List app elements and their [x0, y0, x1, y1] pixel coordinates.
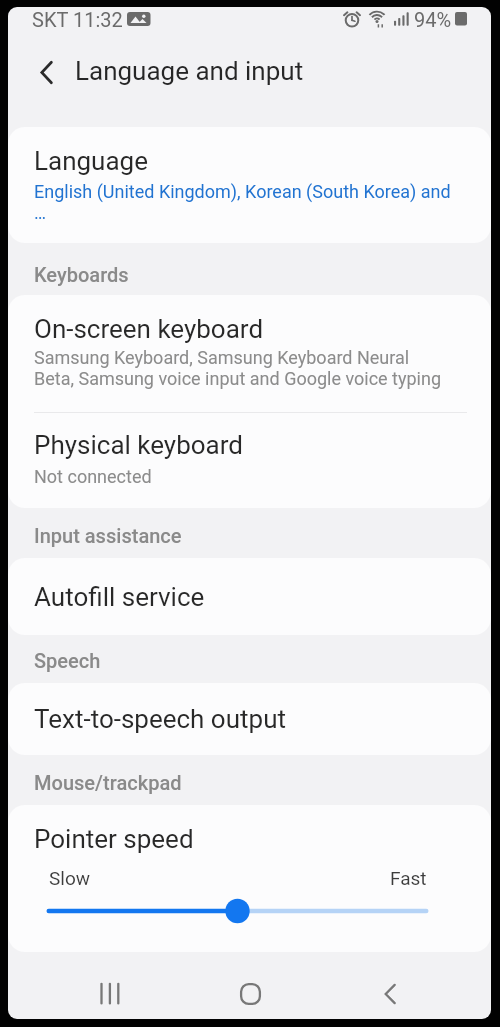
staticText: 94% [414, 8, 452, 31]
staticText: Keyboards [34, 263, 129, 286]
staticText: Fast [390, 867, 427, 889]
button[interactable] [24, 50, 68, 94]
staticText: Pointer speed [34, 824, 194, 854]
button[interactable]: Physical keyboard [8, 413, 491, 508]
staticText: Not connected [34, 466, 152, 487]
button[interactable]: Pointer speed [8, 805, 491, 952]
button[interactable]: Language [8, 127, 491, 243]
button[interactable]: Text-to-speech output [8, 683, 491, 755]
staticText: Text-to-speech output [34, 704, 286, 734]
staticText: Language and input [75, 56, 304, 86]
staticText: On-screen keyboard [34, 314, 264, 344]
staticText: Speech [34, 649, 101, 672]
button[interactable]: Autofill service [8, 558, 491, 635]
staticText: Mouse/trackpad [34, 771, 182, 794]
staticText: SKT 11:32 [32, 8, 123, 31]
staticText: English (United Kingdom), Korean (South … [34, 181, 451, 224]
staticText: Samsung Keyboard, Samsung Keyboard Neura… [34, 347, 442, 390]
staticText: Input assistance [34, 524, 182, 547]
button[interactable] [362, 968, 418, 1019]
staticText: Slow [49, 867, 91, 889]
staticText: Language [34, 146, 148, 176]
button[interactable]: On-screen keyboard [8, 295, 491, 412]
staticText: Physical keyboard [34, 430, 243, 460]
button[interactable] [82, 968, 138, 1019]
staticText: Autofill service [34, 582, 205, 612]
button[interactable] [222, 968, 278, 1019]
